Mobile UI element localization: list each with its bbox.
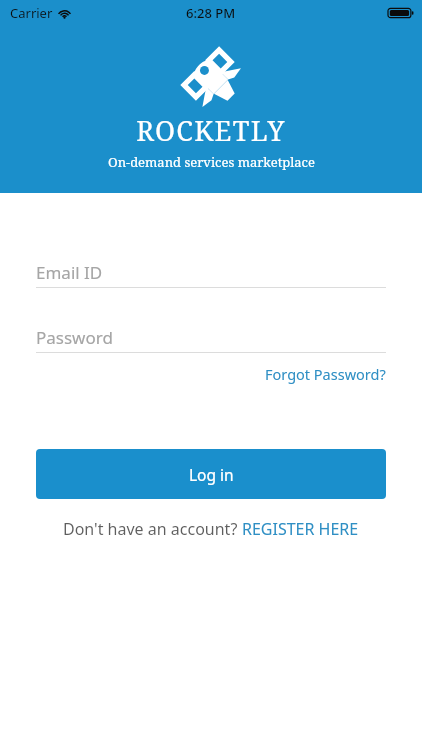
staticText: Forgot Password?: [265, 364, 386, 384]
button[interactable]: Email ID: [36, 257, 386, 288]
staticText: Don't have an account?: [63, 518, 242, 540]
staticText: ROCKETLY: [136, 112, 286, 149]
staticText: Email ID: [36, 261, 103, 284]
staticText: On-demand services marketplace: [108, 153, 315, 171]
staticText: Log in: [189, 464, 234, 485]
staticText: Carrier: [10, 4, 53, 22]
staticText: REGISTER HERE: [242, 518, 359, 540]
staticText: Password: [36, 326, 113, 349]
button[interactable]: Password: [36, 322, 386, 353]
button[interactable]: Log in: [36, 449, 386, 499]
button[interactable]: REGISTER HERE: [242, 516, 359, 542]
button[interactable]: Forgot Password?: [265, 361, 386, 387]
staticText: 6:28 PM: [186, 4, 236, 22]
